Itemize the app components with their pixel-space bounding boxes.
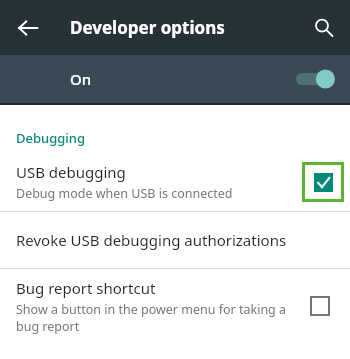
button[interactable]: USB debugging checkbox, checked — [305, 165, 341, 199]
button[interactable]: Back — [8, 8, 48, 48]
button[interactable]: Revoke USB debugging authorizations — [0, 212, 350, 268]
staticText: On — [70, 69, 92, 89]
button[interactable]: Search — [304, 8, 344, 48]
staticText: Developer options — [70, 16, 225, 39]
button[interactable]: Bug report shortcut — [0, 269, 350, 343]
staticText: Revoke USB debugging authorizations — [16, 230, 287, 250]
staticText: USB debugging — [16, 162, 126, 182]
staticText: Show a button in the power menu for taki… — [16, 301, 292, 335]
other: Developer options on — [296, 67, 336, 91]
button[interactable]: Bug report shortcut checkbox, unchecked — [302, 288, 338, 324]
button[interactable]: USB debugging — [0, 153, 350, 211]
staticText: Debug mode when USB is connected — [16, 185, 233, 202]
staticText: Bug report shortcut — [16, 278, 156, 298]
staticText: Debugging — [16, 129, 86, 147]
button[interactable]: On — [0, 55, 350, 103]
